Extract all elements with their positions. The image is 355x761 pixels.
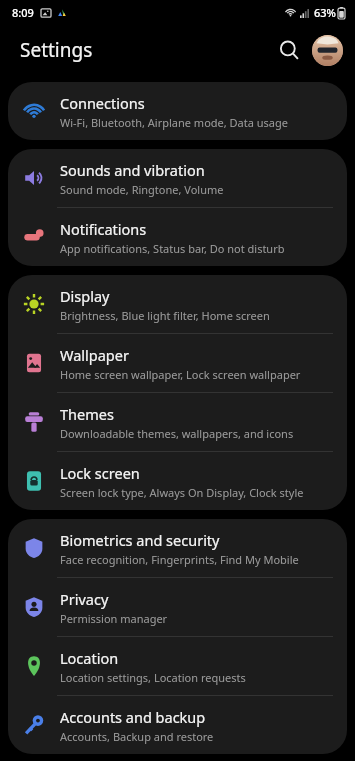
button[interactable]: Display [8, 275, 347, 333]
button[interactable]: Accounts and backup [8, 696, 347, 754]
staticText: Location settings, Location requests [60, 670, 246, 685]
staticText: Home screen wallpaper, Lock screen wallp… [60, 367, 301, 382]
staticText: Face recognition, Fingerprints, Find My … [60, 552, 299, 567]
staticText: Lock screen [60, 463, 140, 483]
button[interactable]: Biometrics and security [8, 519, 347, 577]
button[interactable]: Lock screen [8, 452, 347, 510]
staticText: Screen lock type, Always On Display, Clo… [60, 485, 304, 500]
button[interactable]: Connections [8, 82, 347, 140]
staticText: Sound mode, Ringtone, Volume [60, 182, 224, 197]
staticText: Biometrics and security [60, 530, 220, 550]
staticText: Privacy [60, 589, 109, 609]
button[interactable]: Notifications [8, 208, 347, 266]
staticText: Accounts, Backup and restore [60, 729, 214, 744]
staticText: Downloadable themes, wallpapers, and ico… [60, 426, 294, 441]
button[interactable]: Wallpaper [8, 334, 347, 392]
staticText: 63% [314, 5, 336, 20]
staticText: Notifications [60, 219, 147, 239]
button[interactable]: Search [269, 30, 309, 70]
button[interactable]: Account profile [312, 35, 343, 66]
staticText: Permission manager [60, 611, 168, 626]
staticText: Brightness, Blue light filter, Home scre… [60, 308, 270, 323]
button[interactable]: Privacy [8, 578, 347, 636]
staticText: Location [60, 648, 119, 668]
staticText: Themes [60, 404, 114, 424]
staticText: Accounts and backup [60, 707, 206, 727]
staticText: Sounds and vibration [60, 160, 205, 180]
staticText: Wi-Fi, Bluetooth, Airplane mode, Data us… [60, 115, 288, 130]
button[interactable]: Location [8, 637, 347, 695]
staticText: Connections [60, 93, 145, 113]
staticText: 8:09 [12, 5, 34, 20]
staticText: Settings [20, 37, 93, 63]
staticText: Display [60, 286, 110, 306]
button[interactable]: Themes [8, 393, 347, 451]
staticText: Wallpaper [60, 345, 129, 365]
staticText: App notifications, Status bar, Do not di… [60, 241, 285, 256]
button[interactable]: Sounds and vibration [8, 149, 347, 207]
